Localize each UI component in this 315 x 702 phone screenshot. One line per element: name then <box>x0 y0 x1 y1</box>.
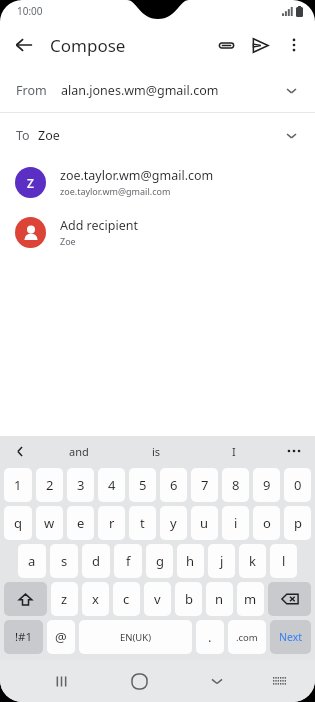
button[interactable]: Hide keyboard <box>199 663 235 699</box>
staticText: u <box>200 514 209 532</box>
button[interactable]: 9 <box>253 468 280 502</box>
staticText: . <box>208 628 212 646</box>
staticText: EN(UK) <box>120 631 152 644</box>
button[interactable]: More suggestions <box>273 436 315 466</box>
button[interactable]: 1 <box>4 468 32 502</box>
button[interactable]: 7 <box>191 468 218 502</box>
button[interactable]: w <box>36 506 63 540</box>
button[interactable]: r <box>98 506 125 540</box>
staticText: 9 <box>263 476 271 494</box>
staticText: 0 <box>294 476 302 494</box>
staticText: 10:00 <box>17 4 43 18</box>
button[interactable]: Next <box>270 620 311 654</box>
button[interactable]: n <box>206 582 233 616</box>
staticText: c <box>123 590 130 608</box>
button[interactable]: b <box>175 582 202 616</box>
button[interactable]: q <box>4 506 32 540</box>
button[interactable]: Attach <box>209 28 243 62</box>
button[interactable]: I <box>195 436 273 466</box>
staticText: b <box>185 590 193 608</box>
staticText: z <box>61 590 68 608</box>
button[interactable]: Previous <box>0 436 40 466</box>
button[interactable]: !#1 <box>4 620 43 654</box>
button[interactable]: @ <box>47 620 75 654</box>
staticText: Add recipient <box>60 217 139 234</box>
staticText: v <box>154 590 161 608</box>
staticText: p <box>294 514 302 532</box>
button[interactable]: y <box>160 506 187 540</box>
button[interactable]: Send <box>243 28 277 62</box>
button[interactable]: j <box>208 544 235 578</box>
button[interactable]: is <box>117 436 195 466</box>
button[interactable]: 5 <box>129 468 156 502</box>
button[interactable]: m <box>237 582 264 616</box>
button[interactable]: 3 <box>67 468 94 502</box>
staticText: zoe.taylor.wm@gmail.com <box>60 167 214 184</box>
staticText: is <box>152 444 161 459</box>
button[interactable]: .com <box>228 620 266 654</box>
button[interactable]: 0 <box>284 468 311 502</box>
button[interactable]: 2 <box>36 468 63 502</box>
button[interactable]: u <box>191 506 218 540</box>
button[interactable]: . <box>196 620 224 654</box>
staticText: From <box>16 82 47 99</box>
button[interactable]: 8 <box>222 468 249 502</box>
button[interactable]: 4 <box>98 468 125 502</box>
button[interactable]: h <box>177 544 204 578</box>
button[interactable]: k <box>239 544 266 578</box>
button[interactable]: z <box>51 582 78 616</box>
button[interactable]: v <box>144 582 171 616</box>
staticText: g <box>156 552 164 570</box>
button[interactable]: t <box>129 506 156 540</box>
staticText: t <box>140 514 145 532</box>
button[interactable]: e <box>67 506 94 540</box>
staticText: 5 <box>139 476 147 494</box>
staticText: I <box>232 444 236 459</box>
staticText: Next <box>279 630 303 644</box>
button[interactable]: g <box>146 544 173 578</box>
button[interactable]: a <box>18 544 46 578</box>
staticText: o <box>263 514 271 532</box>
staticText: 3 <box>77 476 85 494</box>
button[interactable]: Back <box>6 27 42 63</box>
staticText: 2 <box>46 476 54 494</box>
button[interactable]: and <box>40 436 117 466</box>
staticText: y <box>170 514 177 532</box>
button[interactable]: p <box>284 506 311 540</box>
staticText: k <box>249 552 256 570</box>
button[interactable]: d <box>82 544 110 578</box>
staticText: w <box>44 514 55 532</box>
staticText: n <box>215 590 224 608</box>
button[interactable]: s <box>50 544 78 578</box>
button[interactable]: Key <box>268 582 311 616</box>
staticText: .com <box>236 631 258 644</box>
staticText: q <box>14 514 22 532</box>
staticText: zoe.taylor.wm@gmail.com <box>60 185 171 197</box>
button[interactable]: l <box>270 544 297 578</box>
button[interactable]: Z <box>0 157 315 207</box>
button[interactable]: Home <box>121 663 157 699</box>
button[interactable]: Recents <box>43 663 79 699</box>
button[interactable]: EN(UK) <box>79 620 192 654</box>
button[interactable]: c <box>113 582 140 616</box>
button[interactable]: To <box>0 113 315 157</box>
staticText: alan.jones.wm@gmail.com <box>61 82 219 99</box>
button[interactable]: i <box>222 506 249 540</box>
button[interactable]: Key <box>4 582 47 616</box>
button[interactable]: More options <box>277 28 311 62</box>
button[interactable]: 6 <box>160 468 187 502</box>
staticText: i <box>234 514 238 532</box>
staticText: x <box>92 590 99 608</box>
button[interactable]: Switch keyboard <box>264 665 296 697</box>
button[interactable]: Add recipient <box>0 207 315 257</box>
button[interactable]: From <box>0 68 315 112</box>
staticText: and <box>69 444 89 459</box>
button[interactable]: o <box>253 506 280 540</box>
staticText: 4 <box>108 476 116 494</box>
staticText: Zoe <box>38 127 60 144</box>
button[interactable]: f <box>114 544 142 578</box>
button[interactable]: x <box>82 582 109 616</box>
staticText: Compose <box>50 34 126 57</box>
staticText: m <box>244 590 257 608</box>
staticText: h <box>186 552 195 570</box>
